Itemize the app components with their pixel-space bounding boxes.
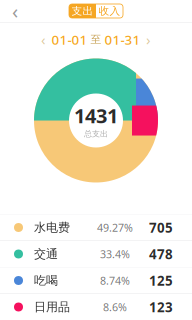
- staticText: 交通: [34, 247, 58, 261]
- staticText: 705: [149, 219, 173, 236]
- button[interactable]: 支出: [69, 4, 96, 18]
- staticText: 8.6%: [103, 300, 127, 314]
- staticText: 总支出: [84, 129, 108, 139]
- button[interactable]: Previous period: [35, 30, 51, 48]
- staticText: ‹: [41, 30, 46, 49]
- staticText: 水电费: [34, 220, 70, 235]
- staticText: 49.27%: [97, 220, 133, 235]
- button[interactable]: 日用品: [0, 294, 192, 320]
- staticText: 吃喝: [34, 273, 58, 288]
- staticText: 478: [149, 245, 173, 263]
- staticText: 8.74%: [100, 273, 130, 288]
- staticText: 01-31: [104, 31, 140, 48]
- staticText: 33.4%: [100, 247, 130, 261]
- staticText: 123: [149, 298, 173, 316]
- staticText: 支出: [71, 4, 93, 17]
- button[interactable]: 水电费: [0, 214, 192, 240]
- staticText: 125: [149, 272, 173, 289]
- button[interactable]: Next period: [140, 30, 156, 48]
- button[interactable]: 收入: [96, 4, 123, 18]
- button[interactable]: Back: [0, 0, 30, 22]
- staticText: ›: [146, 30, 151, 49]
- staticText: 至: [87, 33, 104, 46]
- button[interactable]: 交通: [0, 241, 192, 267]
- staticText: ‹: [12, 0, 18, 24]
- staticText: 1431: [74, 102, 118, 129]
- button[interactable]: 吃喝: [0, 267, 192, 293]
- staticText: 日用品: [34, 300, 70, 314]
- staticText: 01-01: [51, 31, 87, 48]
- staticText: 收入: [98, 4, 120, 17]
